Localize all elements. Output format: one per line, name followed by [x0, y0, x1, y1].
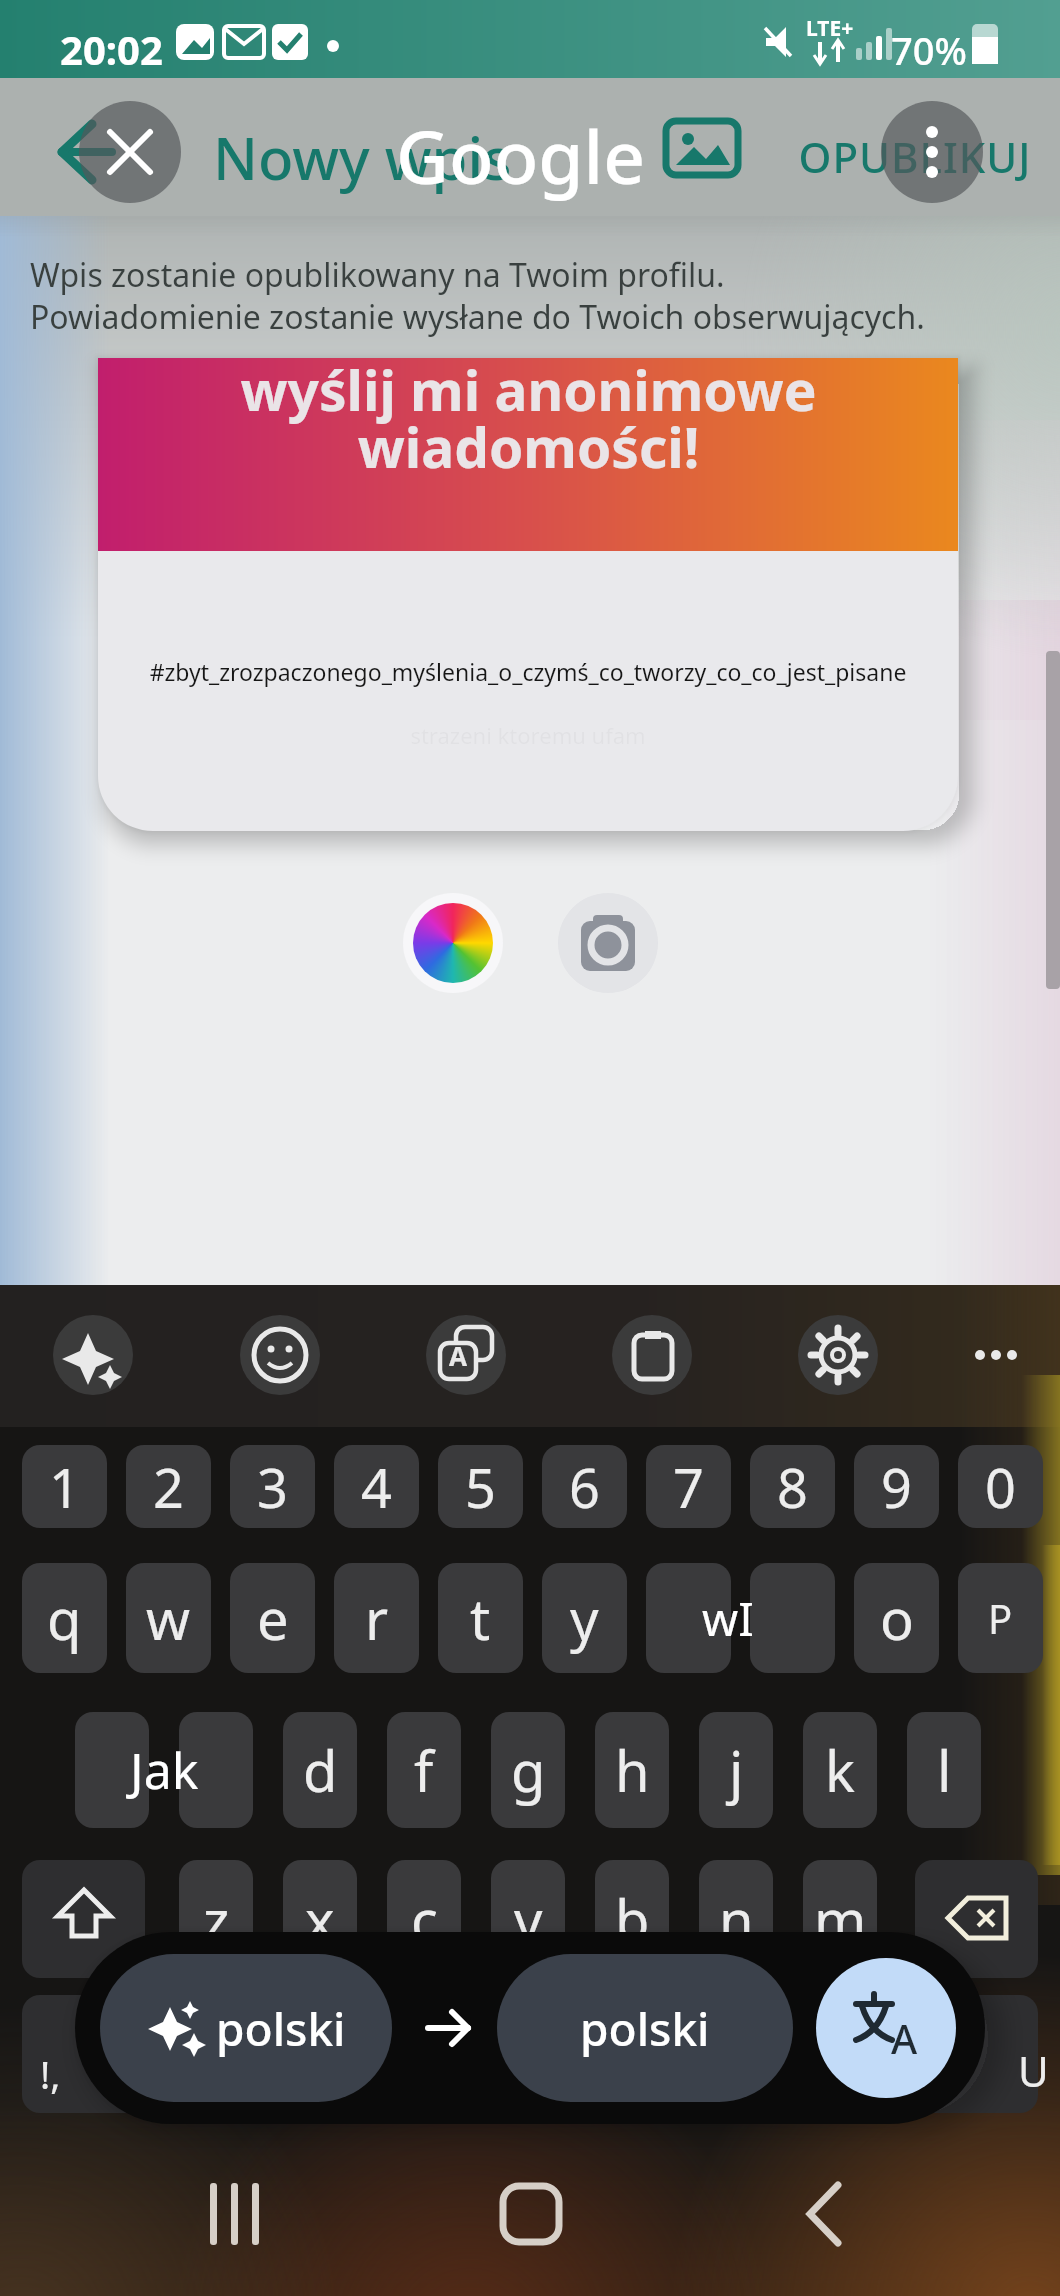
button[interactable]: [612, 1315, 692, 1395]
button[interactable]: 4: [334, 1445, 419, 1528]
button[interactable]: d: [283, 1712, 357, 1828]
staticText: 5: [465, 1450, 496, 1524]
staticText: x: [305, 1881, 335, 1957]
button[interactable]: 8: [750, 1445, 835, 1528]
button[interactable]: [915, 1860, 1038, 1978]
staticText: k: [825, 1732, 855, 1808]
button[interactable]: [750, 1563, 835, 1673]
staticText: OPUBLIKUJ: [790, 128, 1040, 185]
button[interactable]: [915, 1995, 1038, 2113]
staticText: y: [570, 1580, 599, 1656]
staticText: Jak: [130, 1736, 199, 1804]
button[interactable]: [403, 893, 503, 993]
staticText: U: [1018, 2042, 1058, 2099]
button[interactable]: [22, 1860, 145, 1978]
button[interactable]: [22, 1995, 145, 2113]
staticText: h: [615, 1732, 650, 1808]
staticText: !,: [40, 2048, 100, 2100]
button[interactable]: o: [854, 1563, 939, 1673]
staticText: n: [719, 1881, 754, 1957]
staticText: o: [880, 1580, 914, 1656]
staticText: 3: [257, 1450, 288, 1524]
button[interactable]: 7: [646, 1445, 731, 1528]
staticText: wyślij mi anonimowe wiadomości!: [240, 358, 817, 484]
button[interactable]: [798, 1315, 878, 1395]
button[interactable]: [558, 893, 658, 993]
staticText: wI: [702, 1587, 754, 1650]
staticText: t: [470, 1580, 491, 1656]
button[interactable]: g: [491, 1712, 565, 1828]
staticText: 7: [673, 1450, 704, 1524]
button[interactable]: 1: [22, 1445, 107, 1528]
staticText: Powiadomienie zostanie wysłane do Twoich…: [30, 295, 1060, 339]
button[interactable]: [426, 1315, 506, 1395]
staticText: c: [411, 1881, 438, 1957]
staticText: A: [443, 1338, 473, 1373]
button[interactable]: 0: [958, 1445, 1043, 1528]
staticText: P: [988, 1591, 1013, 1645]
staticText: m: [814, 1881, 867, 1957]
staticText: w: [146, 1580, 191, 1656]
button[interactable]: A: [816, 1958, 956, 2098]
button[interactable]: w: [126, 1563, 211, 1673]
button[interactable]: t: [438, 1563, 523, 1673]
button[interactable]: q: [22, 1563, 107, 1673]
staticText: g: [511, 1732, 546, 1808]
staticText: 1: [49, 1450, 80, 1524]
button[interactable]: z: [179, 1860, 253, 1978]
button[interactable]: f: [387, 1712, 461, 1828]
button[interactable]: 2: [126, 1445, 211, 1528]
staticText: Wpis zostanie opublikowany na Twoim prof…: [30, 253, 1050, 297]
staticText: Nowy wpis: [213, 118, 613, 197]
button[interactable]: polski: [100, 1954, 392, 2102]
button[interactable]: 6: [542, 1445, 627, 1528]
staticText: b: [615, 1881, 650, 1957]
staticText: q: [47, 1580, 82, 1656]
staticText: 0: [985, 1450, 1016, 1524]
button[interactable]: wyślij mi anonimowe wiadomości!: [98, 358, 958, 831]
staticText: j: [729, 1732, 744, 1808]
button[interactable]: [646, 1563, 731, 1673]
staticText: 2: [153, 1450, 184, 1524]
staticText: 8: [777, 1450, 808, 1524]
staticText: LTE+: [806, 14, 866, 43]
button[interactable]: j: [699, 1712, 773, 1828]
button[interactable]: v: [491, 1860, 565, 1978]
staticText: f: [414, 1732, 434, 1808]
button[interactable]: [179, 1712, 253, 1828]
button[interactable]: b: [595, 1860, 669, 1978]
button[interactable]: polski: [497, 1954, 793, 2102]
button[interactable]: 5: [438, 1445, 523, 1528]
staticText: 4: [361, 1450, 392, 1524]
staticText: polski: [216, 1997, 346, 2060]
button[interactable]: h: [595, 1712, 669, 1828]
button[interactable]: [75, 1712, 149, 1828]
staticText: e: [257, 1580, 289, 1656]
button[interactable]: [53, 1315, 133, 1395]
button[interactable]: 3: [230, 1445, 315, 1528]
button[interactable]: k: [803, 1712, 877, 1828]
button[interactable]: 9: [854, 1445, 939, 1528]
staticText: 20:02: [60, 22, 180, 76]
staticText: z: [203, 1881, 230, 1957]
staticText: polski: [580, 1997, 710, 2060]
staticText: #zbyt_zrozpaczonego_myślenia_o_czymś_co_…: [98, 656, 958, 687]
button[interactable]: l: [907, 1712, 981, 1828]
button[interactable]: m: [803, 1860, 877, 1978]
staticText: A: [891, 2011, 918, 2065]
button[interactable]: e: [230, 1563, 315, 1673]
button[interactable]: [240, 1315, 320, 1395]
button[interactable]: x: [283, 1860, 357, 1978]
button[interactable]: [958, 1563, 1043, 1673]
staticText: Google: [396, 106, 716, 205]
staticText: d: [303, 1732, 338, 1808]
button[interactable]: r: [334, 1563, 419, 1673]
staticText: 9: [881, 1450, 912, 1524]
button[interactable]: y: [542, 1563, 627, 1673]
staticText: v: [514, 1881, 543, 1957]
button[interactable]: c: [387, 1860, 461, 1978]
staticText: l: [937, 1732, 952, 1808]
button[interactable]: n: [699, 1860, 773, 1978]
staticText: 70%: [891, 24, 971, 76]
